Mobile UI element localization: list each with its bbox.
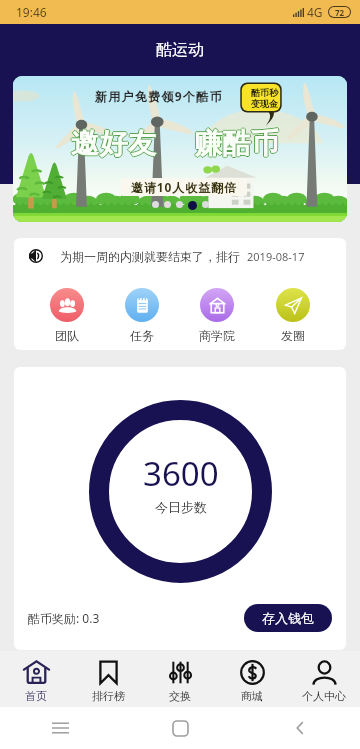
staticText: 酷币秒: [251, 87, 278, 98]
staticText: 交换: [169, 689, 191, 703]
staticText: 赚酷币: [193, 126, 279, 161]
staticText: 72: [335, 7, 345, 17]
staticText: 商城: [241, 689, 263, 703]
button[interactable]: 新用户免费领9个酷币: [13, 76, 347, 222]
staticText: 19:46: [16, 4, 47, 20]
staticText: 赚酷币: [194, 126, 280, 161]
staticText: 商学院: [199, 328, 235, 343]
staticText: 邀好友: [71, 126, 157, 161]
other: Menu: [52, 722, 69, 734]
staticText: 4G: [307, 4, 323, 20]
button[interactable]: 商城: [216, 651, 288, 707]
button[interactable]: 首页: [0, 651, 72, 707]
button[interactable]: 交换: [144, 651, 216, 707]
button[interactable]: 团队: [46, 288, 88, 343]
button[interactable]: 排行榜: [72, 651, 144, 707]
staticText: 2019-08-17: [247, 249, 305, 264]
staticText: 邀好友: [71, 125, 157, 160]
staticText: 为期一周的内测就要结束了，排行: [60, 249, 240, 264]
staticText: 变现金: [251, 98, 278, 109]
staticText: 新用户免费领9个酷币: [95, 88, 223, 104]
staticText: 邀好友: [70, 126, 156, 161]
staticText: 发圈: [281, 328, 305, 343]
other: Back: [293, 721, 307, 735]
staticText: 首页: [25, 689, 47, 703]
staticText: 存入钱包: [262, 610, 314, 626]
staticText: 邀请10人收益翻倍: [131, 179, 237, 195]
button[interactable]: 个人中心: [288, 651, 360, 707]
staticText: 团队: [55, 328, 79, 343]
staticText: 排行榜: [92, 689, 125, 703]
staticText: 个人中心: [302, 689, 346, 703]
button[interactable]: 存入钱包: [244, 604, 332, 632]
staticText: 任务: [130, 328, 154, 343]
staticText: 赚酷币: [195, 126, 281, 161]
button[interactable]: 商学院: [195, 288, 239, 343]
other: Home: [173, 721, 188, 736]
staticText: 酷运动: [156, 40, 204, 60]
staticText: 3600: [143, 451, 219, 496]
button[interactable]: 任务: [121, 288, 163, 343]
button[interactable]: 发圈: [272, 288, 314, 343]
staticText: 赚酷币: [194, 127, 280, 162]
staticText: 酷币奖励: 0.3: [28, 610, 100, 626]
staticText: 今日步数: [155, 499, 207, 515]
staticText: 邀好友: [71, 127, 157, 162]
staticText: 赚酷币: [194, 125, 280, 160]
staticText: 邀好友: [72, 126, 158, 161]
